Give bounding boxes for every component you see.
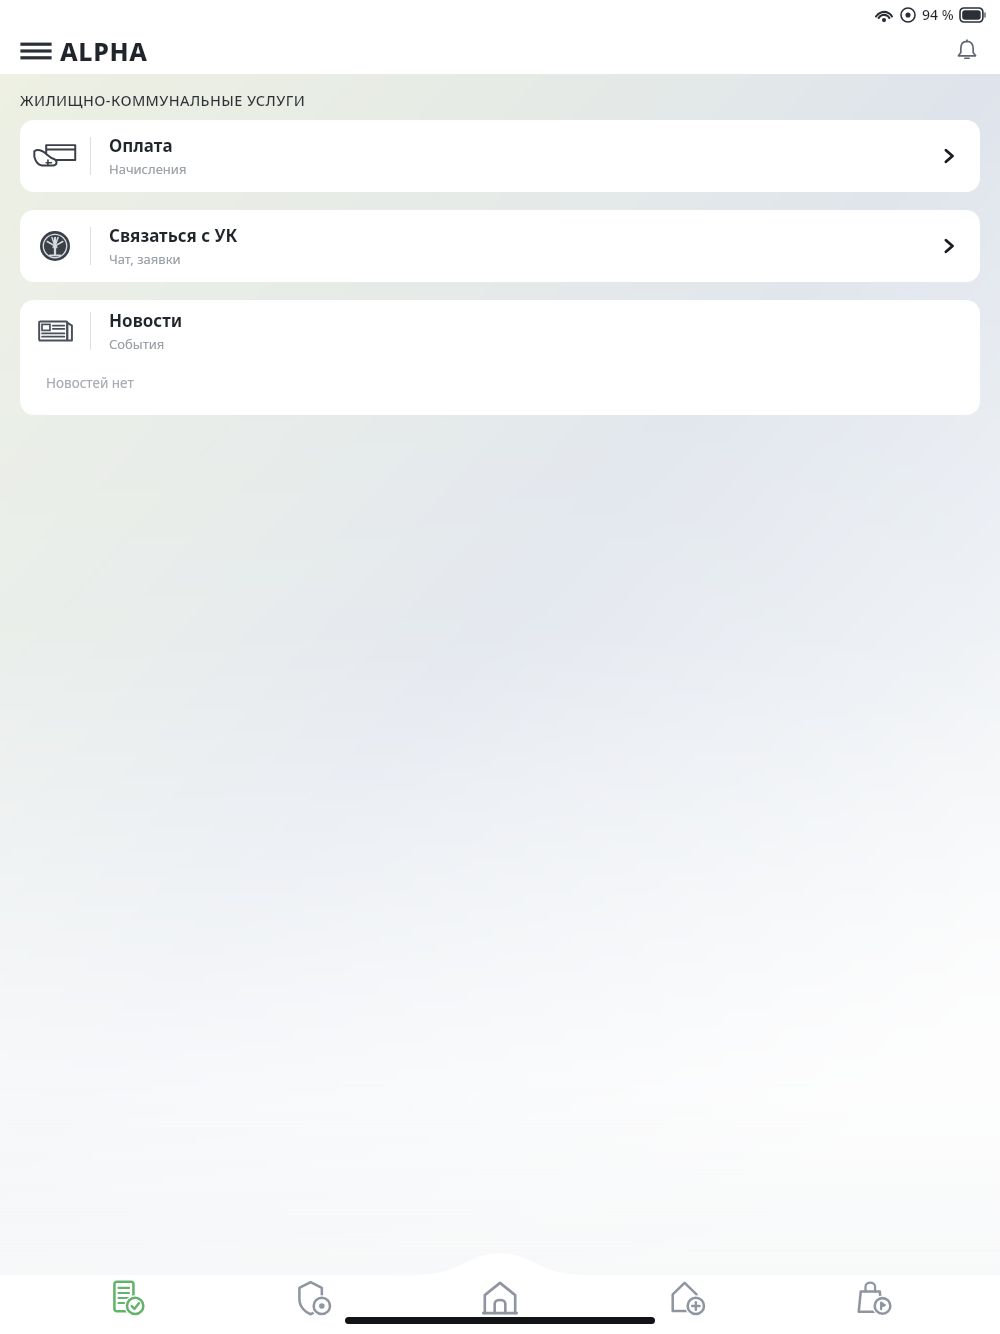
button[interactable]: Home xyxy=(440,1272,560,1324)
button[interactable]: Security xyxy=(253,1272,373,1324)
button[interactable]: Services xyxy=(627,1272,747,1324)
staticText: Чат, заявки xyxy=(109,250,181,268)
staticText: ЖИЛИЩНО-КОММУНАЛЬНЫЕ УСЛУГИ xyxy=(20,90,306,110)
button[interactable]: Menu xyxy=(18,37,54,65)
staticText: События xyxy=(109,335,165,353)
staticText: Новости xyxy=(109,309,183,332)
staticText: Новостей нет xyxy=(46,374,134,392)
button[interactable]: Bills xyxy=(67,1272,187,1324)
button[interactable]: Связаться с УК xyxy=(20,210,980,282)
staticText: 94 % xyxy=(922,5,954,24)
staticText: Связаться с УК xyxy=(109,224,238,247)
staticText: Начисления xyxy=(109,160,187,178)
button[interactable]: Оплата xyxy=(20,120,980,192)
button[interactable]: Shop xyxy=(813,1272,933,1324)
button[interactable]: Notifications xyxy=(948,31,986,71)
button[interactable]: Новости xyxy=(20,300,980,415)
staticText: ALPHA xyxy=(60,34,148,68)
staticText: Оплата xyxy=(109,134,173,157)
